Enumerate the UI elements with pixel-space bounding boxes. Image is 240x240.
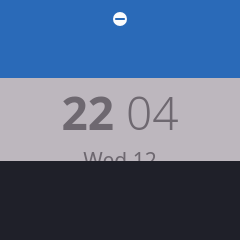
staticText: Wed 12 [83,146,157,161]
button[interactable]: Do not disturb [110,9,130,29]
staticText: 22 04 [61,81,179,144]
button[interactable]: 22 04 [0,78,240,161]
